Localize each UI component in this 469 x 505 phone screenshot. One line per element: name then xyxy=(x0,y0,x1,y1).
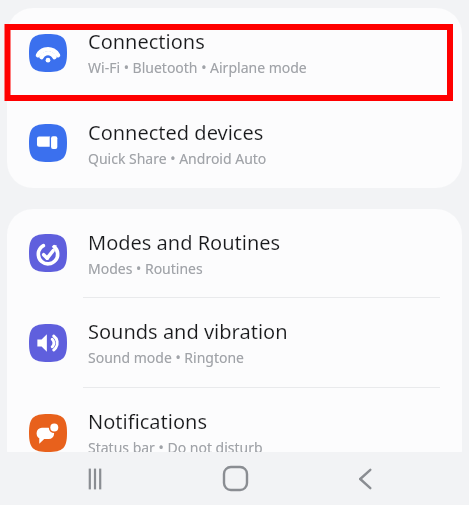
button[interactable]: Back xyxy=(331,452,401,505)
button[interactable]: Recent apps xyxy=(60,452,130,505)
staticText: Quick Share • Android Auto xyxy=(88,149,267,168)
staticText: Wi-Fi • Bluetooth • Airplane mode xyxy=(88,58,307,77)
staticText: Connections xyxy=(88,28,205,55)
staticText: Sounds and vibration xyxy=(88,318,288,345)
staticText: Sound mode • Ringtone xyxy=(88,348,244,367)
staticText: Status bar • Do not disturb xyxy=(88,438,263,457)
button[interactable]: Connected devices xyxy=(7,98,462,188)
staticText: Notifications xyxy=(88,408,207,435)
button[interactable]: Home xyxy=(200,452,270,505)
button[interactable]: Connections xyxy=(7,8,462,97)
button[interactable]: Notifications xyxy=(7,388,462,477)
button[interactable]: Sounds and vibration xyxy=(7,298,462,387)
button[interactable]: Modes and Routines xyxy=(7,209,462,297)
staticText: Modes • Routines xyxy=(88,259,203,278)
staticText: Connected devices xyxy=(88,119,264,146)
staticText: Modes and Routines xyxy=(88,229,281,256)
